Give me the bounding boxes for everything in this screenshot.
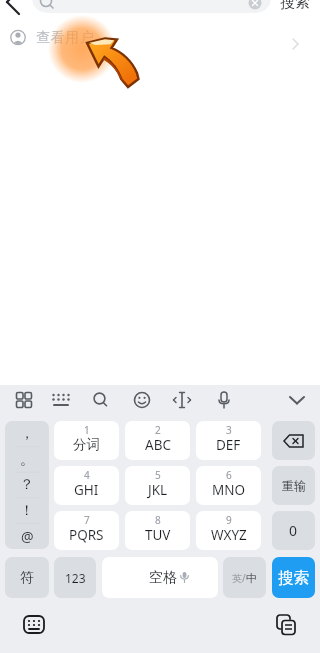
staticText: WXYZ bbox=[211, 526, 247, 544]
button[interactable]: 空格 bbox=[102, 557, 218, 598]
staticText: 9 bbox=[226, 513, 232, 527]
staticText: 0 bbox=[289, 521, 298, 540]
staticText: GHI bbox=[74, 481, 99, 499]
button[interactable]: 重输 bbox=[272, 466, 315, 505]
button[interactable] bbox=[126, 386, 158, 414]
staticText: 重输 bbox=[282, 478, 306, 493]
button[interactable] bbox=[166, 386, 198, 414]
button[interactable]: 2 bbox=[125, 421, 190, 460]
button[interactable] bbox=[208, 386, 240, 414]
staticText: 。 bbox=[20, 451, 34, 469]
button[interactable]: 1 bbox=[54, 421, 119, 460]
button[interactable]: 英/中 bbox=[223, 557, 266, 598]
button[interactable]: 5 bbox=[125, 466, 190, 505]
button[interactable]: 9 bbox=[196, 511, 261, 550]
staticText: 搜索 bbox=[278, 568, 309, 588]
staticText: 分词 bbox=[73, 436, 100, 453]
staticText: 123 bbox=[65, 570, 86, 586]
staticText: 英/中 bbox=[232, 571, 257, 585]
staticText: 8 bbox=[155, 513, 161, 527]
button[interactable] bbox=[0, 24, 320, 56]
button[interactable] bbox=[245, 0, 265, 12]
staticText: 4 bbox=[84, 468, 90, 482]
button[interactable]: 7 bbox=[54, 511, 119, 550]
staticText: ， bbox=[20, 425, 34, 443]
button[interactable]: 8 bbox=[125, 511, 190, 550]
button[interactable] bbox=[84, 386, 116, 414]
staticText: 搜索 bbox=[280, 0, 310, 12]
button[interactable]: 3 bbox=[196, 421, 261, 460]
staticText: 1 bbox=[84, 423, 90, 437]
staticText: @ bbox=[21, 527, 34, 546]
staticText: ！ bbox=[20, 502, 34, 520]
staticText: 3 bbox=[226, 423, 232, 437]
button[interactable]: 123 bbox=[54, 557, 96, 598]
button[interactable] bbox=[45, 386, 77, 414]
staticText: TUV bbox=[145, 526, 171, 544]
button[interactable]: 0 bbox=[272, 511, 315, 550]
button[interactable] bbox=[8, 386, 40, 414]
staticText: ？ bbox=[20, 476, 34, 494]
button[interactable] bbox=[266, 611, 306, 641]
staticText: 7 bbox=[84, 513, 90, 527]
staticText: 查看用户 bbox=[36, 29, 94, 47]
button[interactable]: ， bbox=[5, 421, 49, 549]
button[interactable] bbox=[14, 611, 54, 641]
button[interactable] bbox=[281, 386, 313, 414]
button[interactable] bbox=[272, 421, 315, 460]
button[interactable] bbox=[274, 0, 320, 18]
staticText: 5 bbox=[155, 468, 161, 482]
button[interactable]: 符 bbox=[5, 557, 49, 598]
staticText: JKL bbox=[148, 481, 168, 499]
staticText: MNO bbox=[212, 481, 246, 499]
staticText: 6 bbox=[226, 468, 232, 482]
button[interactable]: 4 bbox=[54, 466, 119, 505]
button[interactable] bbox=[0, 0, 30, 20]
staticText: ABC bbox=[145, 436, 171, 454]
button[interactable]: 6 bbox=[196, 466, 261, 505]
button[interactable] bbox=[32, 0, 271, 13]
staticText: 符 bbox=[20, 569, 34, 586]
staticText: 2 bbox=[155, 423, 161, 437]
staticText: 空格 bbox=[149, 569, 177, 587]
staticText: PQRS bbox=[69, 526, 104, 544]
button[interactable]: 搜索 bbox=[272, 557, 315, 598]
staticText: DEF bbox=[216, 436, 241, 454]
